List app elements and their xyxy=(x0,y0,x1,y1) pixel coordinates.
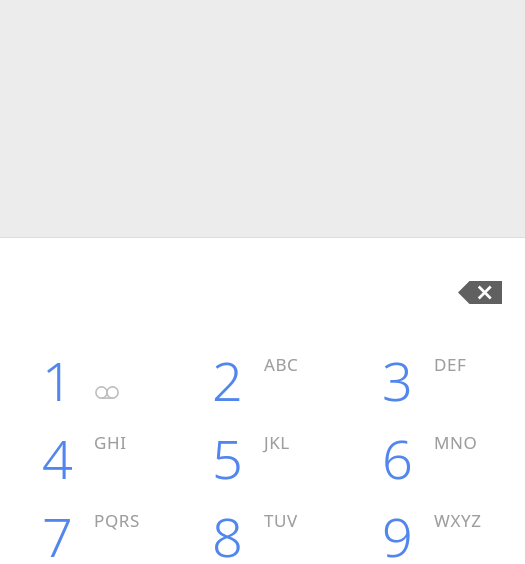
staticText: 4 xyxy=(42,421,94,495)
button[interactable]: 8 xyxy=(198,498,368,564)
staticText: 9 xyxy=(382,499,434,564)
button[interactable]: 7 xyxy=(28,498,198,564)
button[interactable]: 5 xyxy=(198,420,368,498)
staticText: 1 xyxy=(42,343,94,417)
staticText: MNO xyxy=(434,431,478,454)
staticText: 5 xyxy=(212,421,264,495)
button[interactable]: 6 xyxy=(368,420,525,498)
button[interactable]: 9 xyxy=(368,498,525,564)
button[interactable]: 4 xyxy=(28,420,198,498)
staticText: 6 xyxy=(382,421,434,495)
staticText: PQRS xyxy=(94,509,140,532)
staticText: TUV xyxy=(264,509,298,532)
staticText: JKL xyxy=(264,431,290,454)
staticText: 8 xyxy=(212,499,264,564)
button[interactable]: 1 xyxy=(28,342,198,420)
staticText: DEF xyxy=(434,353,467,376)
button[interactable]: 2 xyxy=(198,342,368,420)
staticText: 7 xyxy=(42,499,94,564)
button[interactable]: 3 xyxy=(368,342,525,420)
staticText: 3 xyxy=(382,343,434,417)
staticText: GHI xyxy=(94,431,127,454)
staticText: 2 xyxy=(212,343,264,417)
staticText: ABC xyxy=(264,353,299,376)
button[interactable]: Backspace xyxy=(447,271,513,313)
staticText: WXYZ xyxy=(434,509,482,532)
